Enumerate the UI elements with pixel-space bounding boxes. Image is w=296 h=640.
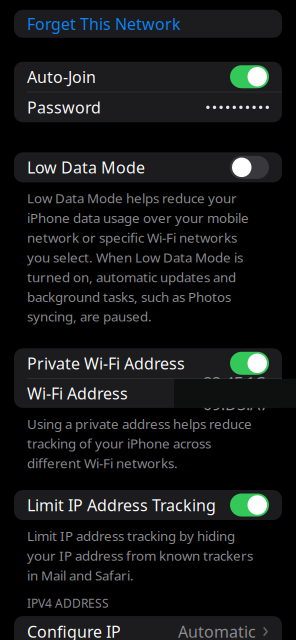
button[interactable]: Low Data Mode bbox=[14, 152, 282, 182]
staticText: Auto-Join bbox=[27, 66, 96, 87]
button[interactable]: Configure IP bbox=[14, 616, 282, 640]
button[interactable]: Auto-Join bbox=[14, 62, 282, 92]
staticText: 82:4F:1C:09:D3:A7 bbox=[203, 372, 269, 415]
staticText: Using a private address helps reduce tra… bbox=[27, 415, 252, 472]
staticText: Low Data Mode helps reduce your iPhone d… bbox=[27, 189, 249, 325]
staticText: Automatic bbox=[178, 621, 256, 640]
button[interactable]: Private Wi-Fi Address bbox=[14, 348, 282, 378]
staticText: Forget This Network bbox=[27, 13, 181, 34]
staticText: IPV4 ADDRESS bbox=[27, 595, 109, 611]
button[interactable]: Limit IP Address Tracking bbox=[14, 490, 282, 520]
staticText: Wi-Fi Address bbox=[27, 383, 128, 404]
button[interactable]: Forget This Network bbox=[14, 10, 282, 38]
staticText: Configure IP bbox=[27, 621, 121, 640]
staticText: Low Data Mode bbox=[27, 157, 145, 178]
staticText: Private Wi-Fi Address bbox=[27, 353, 185, 374]
staticText: Limit IP Address Tracking bbox=[27, 494, 216, 516]
staticText: Password bbox=[27, 97, 101, 118]
staticText: Limit IP address tracking by hiding your… bbox=[27, 527, 253, 584]
